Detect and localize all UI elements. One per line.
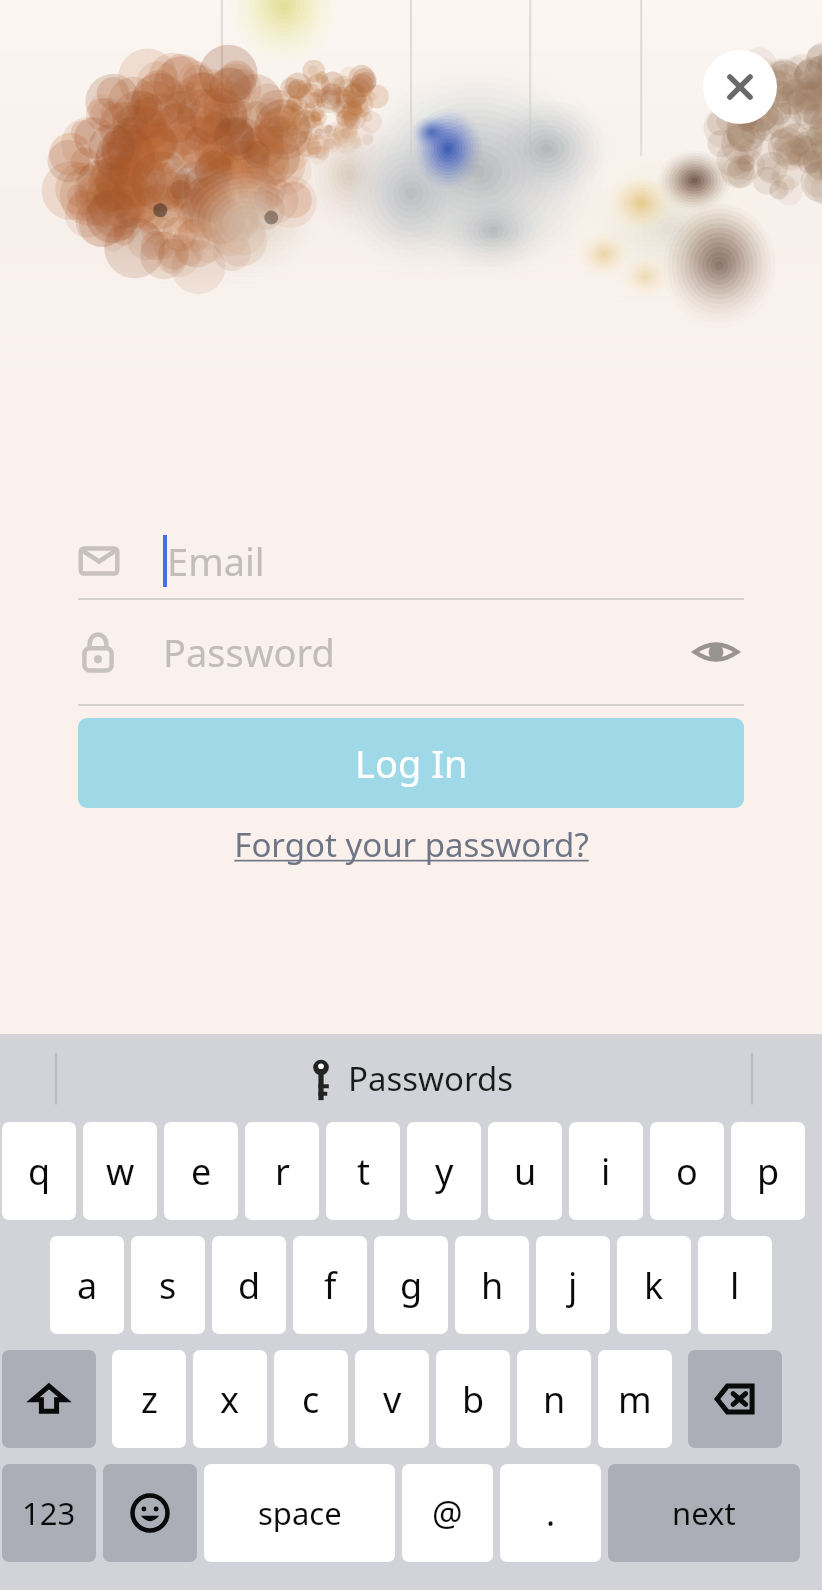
button[interactable]: a (50, 1236, 124, 1334)
button[interactable]: i (569, 1122, 643, 1220)
staticText: w (106, 1147, 135, 1196)
staticText: b (462, 1375, 485, 1424)
button[interactable]: next (608, 1464, 800, 1562)
staticText: p (757, 1147, 780, 1196)
staticText: y (435, 1147, 454, 1196)
button[interactable]: t (326, 1122, 400, 1220)
button[interactable]: u (488, 1122, 562, 1220)
button[interactable]: Email (78, 524, 744, 598)
button[interactable]: . (500, 1464, 601, 1562)
button[interactable]: l (698, 1236, 772, 1334)
staticText: k (644, 1261, 664, 1310)
button[interactable]: v (355, 1350, 429, 1448)
button[interactable]: z (112, 1350, 186, 1448)
button[interactable]: Forgot your password? (224, 816, 599, 873)
staticText: m (618, 1375, 652, 1424)
staticText: z (141, 1375, 158, 1424)
button[interactable]: Show password (688, 624, 744, 680)
button[interactable]: d (212, 1236, 286, 1334)
button[interactable]: h (455, 1236, 529, 1334)
staticText: g (400, 1261, 423, 1310)
button[interactable]: o (650, 1122, 724, 1220)
staticText: t (357, 1147, 370, 1196)
button[interactable]: Close (703, 50, 777, 124)
staticText: Passwords (348, 1056, 514, 1101)
button[interactable]: m (598, 1350, 672, 1448)
button[interactable]: r (245, 1122, 319, 1220)
button[interactable]: Backspace (688, 1350, 782, 1448)
staticText: e (191, 1147, 212, 1196)
button[interactable]: x (193, 1350, 267, 1448)
button[interactable]: 123 (2, 1464, 96, 1562)
button[interactable]: y (407, 1122, 481, 1220)
staticText: Password (163, 626, 335, 678)
staticText: i (601, 1147, 611, 1196)
button[interactable]: k (617, 1236, 691, 1334)
staticText: . (546, 1490, 556, 1536)
staticText: d (238, 1261, 261, 1310)
staticText: Log In (355, 737, 468, 789)
button[interactable]: g (374, 1236, 448, 1334)
button[interactable]: space (204, 1464, 395, 1562)
staticText: a (77, 1261, 98, 1310)
button[interactable]: n (517, 1350, 591, 1448)
staticText: x (220, 1375, 240, 1424)
staticText: l (730, 1261, 740, 1310)
button[interactable]: w (83, 1122, 157, 1220)
button[interactable]: q (2, 1122, 76, 1220)
staticText: r (275, 1147, 290, 1196)
button[interactable]: p (731, 1122, 805, 1220)
button[interactable]: e (164, 1122, 238, 1220)
staticText: space (258, 1492, 342, 1534)
button[interactable]: Shift (2, 1350, 96, 1448)
staticText: u (514, 1147, 537, 1196)
button[interactable]: j (536, 1236, 610, 1334)
staticText: h (481, 1261, 504, 1310)
staticText: next (672, 1492, 736, 1534)
staticText: c (302, 1375, 320, 1424)
button[interactable]: s (131, 1236, 205, 1334)
button[interactable]: c (274, 1350, 348, 1448)
staticText: n (543, 1375, 566, 1424)
button[interactable]: f (293, 1236, 367, 1334)
staticText: o (676, 1147, 698, 1196)
button[interactable]: Emoji (103, 1464, 197, 1562)
staticText: s (159, 1261, 177, 1310)
staticText: 123 (22, 1492, 76, 1534)
staticText: Forgot your password? (234, 822, 589, 867)
button[interactable]: Passwords (300, 1056, 522, 1101)
staticText: v (383, 1375, 402, 1424)
staticText: @ (432, 1490, 463, 1536)
button[interactable]: b (436, 1350, 510, 1448)
staticText: q (28, 1147, 51, 1196)
staticText: j (568, 1261, 578, 1310)
button[interactable]: Log In (78, 718, 744, 808)
staticText: Email (167, 535, 265, 587)
button[interactable]: Password (78, 600, 744, 704)
button[interactable]: @ (402, 1464, 493, 1562)
staticText: f (324, 1261, 337, 1310)
